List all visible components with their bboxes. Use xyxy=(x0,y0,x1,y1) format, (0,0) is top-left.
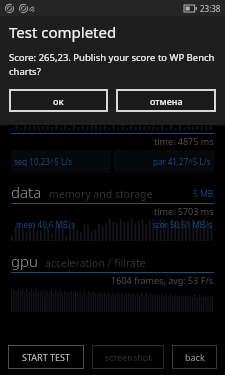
staticText: gpu xyxy=(11,251,38,271)
button[interactable]: ок xyxy=(9,89,108,112)
staticText: seq 10,23^5 L/s xyxy=(14,156,73,167)
staticText: data xyxy=(11,182,42,202)
staticText: ок xyxy=(53,95,64,107)
staticText: acceleration / fillrate xyxy=(45,256,146,270)
staticText: mem 40,6 MB/s xyxy=(16,219,75,230)
staticText: memory and storage xyxy=(49,187,153,201)
staticText: par 41,27^5 L/s xyxy=(153,156,211,167)
button[interactable]: START TEST xyxy=(8,345,84,369)
staticText: START TEST xyxy=(22,351,70,363)
button[interactable]: back xyxy=(172,345,217,369)
staticText: time: 5703 ms xyxy=(154,205,214,217)
staticText: 5 MB xyxy=(193,188,214,200)
staticText: back xyxy=(185,351,205,363)
button[interactable]: screenshot xyxy=(92,345,164,369)
staticText: Test completed xyxy=(9,22,117,42)
staticText: отмена xyxy=(150,95,183,107)
button[interactable]: отмена xyxy=(116,89,216,112)
staticText: time: 4875 ms xyxy=(154,135,214,147)
staticText: 23:38 xyxy=(200,3,221,14)
staticText: screenshot xyxy=(105,351,152,363)
staticText: Score: 265,23. Publish your score to WP … xyxy=(9,51,216,78)
staticText: 1604 frames, avg: 53 F/s xyxy=(111,274,214,286)
staticText: stor 50,61 MB/s xyxy=(153,219,212,230)
